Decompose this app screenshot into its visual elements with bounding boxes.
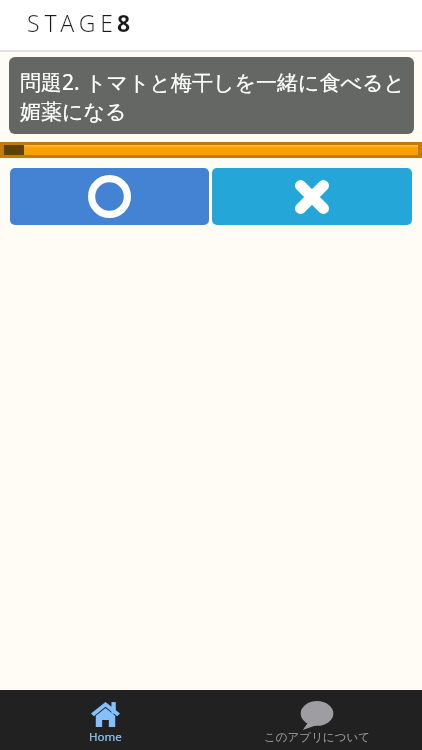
button[interactable]: Maru - True — [10, 168, 209, 225]
staticText: このアプリについて — [264, 730, 370, 744]
staticText: 8 — [117, 7, 131, 38]
button[interactable]: Batsu - False — [212, 168, 412, 225]
staticText: 問題2. トマトと梅干しを一緒に食べると媚薬になる — [20, 68, 408, 125]
button[interactable]: このアプリについて — [211, 690, 422, 750]
staticText: STAGE — [27, 7, 119, 38]
staticText: Home — [89, 729, 122, 745]
button[interactable]: Home — [0, 690, 211, 750]
